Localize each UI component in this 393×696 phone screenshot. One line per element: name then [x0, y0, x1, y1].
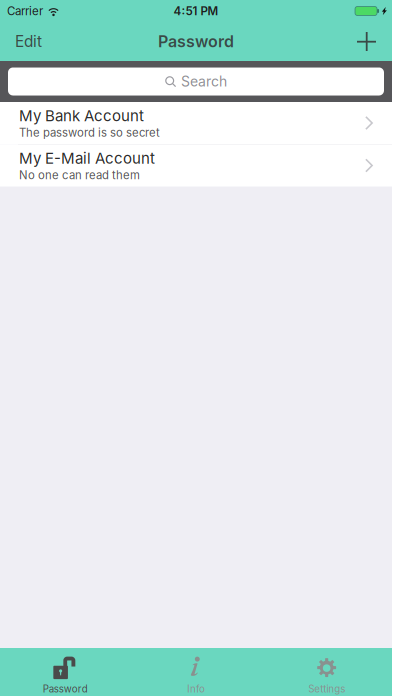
- button[interactable]: Search: [0, 61, 392, 102]
- staticText: No one can read them: [19, 168, 140, 182]
- button[interactable]: My E-Mail Account: [0, 144, 392, 186]
- staticText: My E-Mail Account: [19, 149, 155, 167]
- staticText: The password is so secret: [19, 126, 160, 139]
- button[interactable]: Password: [0, 649, 131, 695]
- button[interactable]: Info: [131, 649, 261, 695]
- staticText: My Bank Account: [19, 106, 144, 125]
- staticText: Search: [181, 73, 227, 90]
- staticText: Settings: [308, 683, 345, 695]
- staticText: Password: [158, 32, 234, 51]
- staticText: Edit: [15, 32, 42, 51]
- button[interactable]: Edit: [5, 23, 52, 60]
- button[interactable]: My Bank Account: [0, 102, 392, 144]
- button[interactable]: Add: [346, 23, 387, 60]
- staticText: 4:51 PM: [173, 4, 218, 18]
- staticText: Info: [187, 683, 205, 695]
- staticText: Carrier: [7, 4, 43, 18]
- staticText: Password: [43, 683, 88, 695]
- button[interactable]: Settings: [261, 649, 392, 695]
